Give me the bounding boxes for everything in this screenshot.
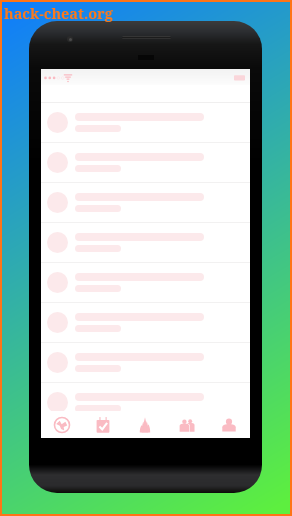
button[interactable]: Trending <box>124 411 166 438</box>
button[interactable] <box>41 343 250 382</box>
button[interactable] <box>41 383 250 411</box>
staticText: hack-cheat.org <box>4 3 113 23</box>
button[interactable] <box>41 103 250 142</box>
button[interactable] <box>41 263 250 302</box>
button[interactable] <box>41 223 250 262</box>
button[interactable]: Events <box>82 411 124 438</box>
button[interactable] <box>41 183 250 222</box>
button[interactable] <box>41 143 250 182</box>
button[interactable]: Explore <box>41 411 82 438</box>
button[interactable]: Profile <box>208 411 250 438</box>
button[interactable]: Groups <box>166 411 208 438</box>
button[interactable] <box>41 303 250 342</box>
